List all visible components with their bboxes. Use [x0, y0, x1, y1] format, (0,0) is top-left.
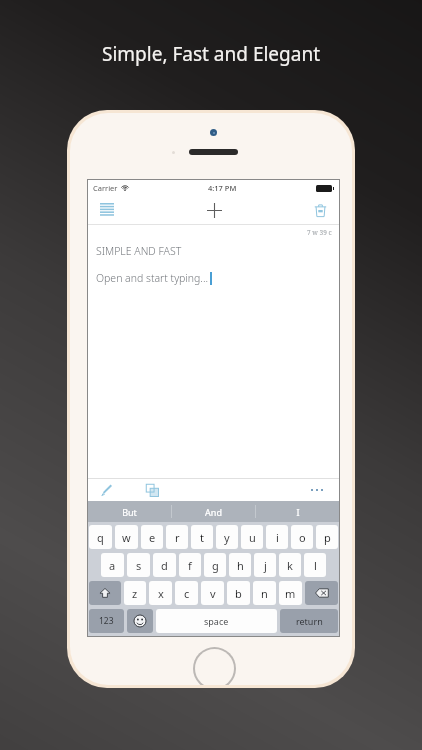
staticText: g [212, 558, 219, 573]
staticText: a [109, 558, 116, 573]
button[interactable]: 123 [89, 609, 124, 633]
button[interactable]: p [316, 525, 338, 549]
staticText: q [97, 530, 104, 545]
button[interactable]: b [227, 581, 250, 605]
button[interactable]: Home [195, 649, 234, 685]
button[interactable]: Copy [142, 480, 162, 500]
staticText: v [210, 586, 216, 601]
button[interactable]: j [254, 553, 276, 577]
button[interactable]: Shift [89, 581, 121, 605]
staticText: o [299, 530, 306, 545]
staticText: return [296, 615, 323, 627]
staticText: l [314, 558, 317, 573]
button[interactable]: d [153, 553, 176, 577]
staticText: x [158, 586, 164, 601]
staticText: 123 [99, 615, 114, 627]
button[interactable]: a [101, 553, 124, 577]
staticText: n [261, 586, 268, 601]
button[interactable]: v [201, 581, 224, 605]
staticText: r [175, 530, 180, 545]
button[interactable]: g [204, 553, 226, 577]
button[interactable]: n [253, 581, 276, 605]
button[interactable]: return [280, 609, 338, 633]
staticText: Open and start typing... [96, 271, 209, 285]
staticText: u [249, 530, 256, 545]
staticText: j [264, 558, 267, 573]
staticText: f [188, 558, 192, 573]
staticText: k [287, 558, 293, 573]
staticText: But [122, 506, 137, 518]
button[interactable]: f [179, 553, 201, 577]
staticText: y [224, 530, 230, 545]
button[interactable]: w [115, 525, 138, 549]
staticText: c [184, 586, 190, 601]
button[interactable]: But [88, 501, 171, 522]
button[interactable]: Backspace [305, 581, 338, 605]
staticText: h [237, 558, 244, 573]
button[interactable]: r [166, 525, 188, 549]
button[interactable]: New note [201, 197, 227, 223]
button[interactable]: Edit [97, 480, 117, 500]
button[interactable]: q [89, 525, 112, 549]
button[interactable]: Notes list [96, 199, 118, 221]
button[interactable]: Emoji [127, 609, 153, 633]
button[interactable]: l [304, 553, 326, 577]
button[interactable]: And [172, 501, 255, 522]
staticText: SIMPLE AND FAST [96, 244, 182, 258]
staticText: i [276, 530, 279, 545]
staticText: e [149, 530, 156, 545]
button[interactable]: Delete note [309, 199, 331, 221]
staticText: d [161, 558, 168, 573]
button[interactable]: k [279, 553, 301, 577]
button[interactable]: u [241, 525, 263, 549]
button[interactable]: y [216, 525, 238, 549]
staticText: w [122, 530, 131, 545]
button[interactable]: 7 w 39 c [88, 225, 339, 478]
staticText: I [296, 506, 300, 518]
staticText: s [136, 558, 142, 573]
staticText: Simple, Fast and Elegant [102, 41, 321, 67]
button[interactable]: More options [304, 480, 330, 500]
staticText: 4:17 PM [208, 183, 237, 193]
button[interactable]: z [124, 581, 146, 605]
button[interactable]: I [256, 501, 339, 522]
button[interactable]: s [127, 553, 150, 577]
staticText: Carrier [93, 183, 118, 193]
staticText: space [204, 615, 229, 627]
button[interactable]: space [156, 609, 277, 633]
button[interactable]: c [175, 581, 198, 605]
staticText: p [324, 530, 331, 545]
button[interactable]: x [149, 581, 172, 605]
button[interactable]: e [141, 525, 163, 549]
staticText: b [235, 586, 242, 601]
button[interactable]: t [191, 525, 213, 549]
staticText: z [132, 586, 138, 601]
staticText: 7 w 39 c [307, 228, 332, 237]
staticText: m [285, 586, 296, 601]
button[interactable]: o [291, 525, 313, 549]
button[interactable]: m [279, 581, 302, 605]
button[interactable]: i [266, 525, 288, 549]
button[interactable]: h [229, 553, 251, 577]
staticText: t [200, 530, 204, 545]
staticText: And [205, 506, 222, 518]
